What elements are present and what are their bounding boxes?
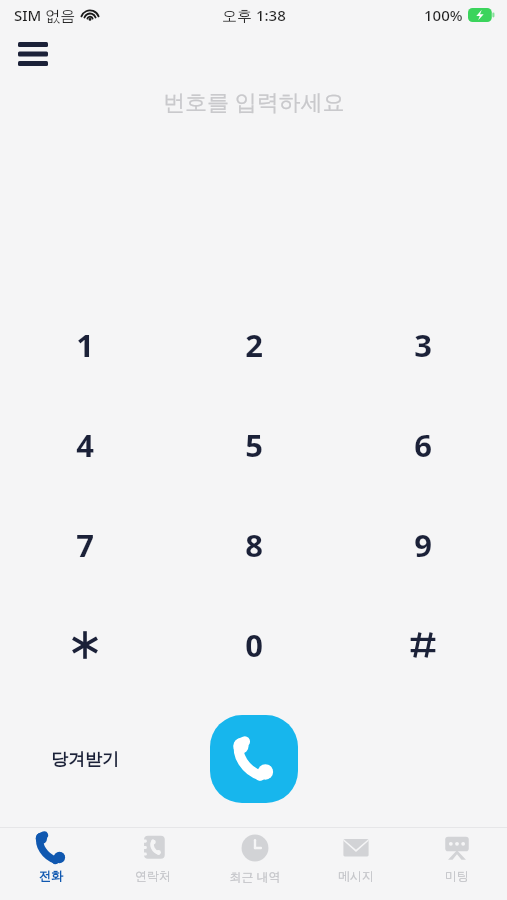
staticText: 번호를 입력하세요: [163, 86, 345, 116]
staticText: 당겨받기: [51, 749, 119, 770]
staticText: 4: [76, 424, 94, 466]
button[interactable]: 5: [169, 395, 338, 495]
staticText: 메시지: [338, 868, 374, 883]
staticText: 6: [414, 424, 432, 466]
button[interactable]: 4: [0, 395, 169, 495]
button[interactable]: 전화 걸기: [210, 715, 298, 803]
button[interactable]: 1: [0, 295, 169, 395]
staticText: 최근 내역: [229, 868, 281, 884]
button[interactable]: 8: [169, 495, 338, 595]
button[interactable]: 7: [0, 495, 169, 595]
staticText: 8: [245, 524, 263, 566]
button[interactable]: 0: [169, 595, 338, 695]
button[interactable]: [338, 595, 507, 695]
button[interactable]: 메뉴: [10, 31, 56, 77]
button[interactable]: 연락처: [102, 828, 204, 900]
button[interactable]: 당겨받기: [0, 713, 169, 805]
staticText: 미팅: [445, 868, 469, 883]
staticText: 1: [76, 324, 94, 366]
button[interactable]: [0, 595, 169, 695]
button[interactable]: 2: [169, 295, 338, 395]
button[interactable]: 미팅: [406, 828, 507, 900]
staticText: 0: [245, 624, 263, 666]
button[interactable]: 메시지: [305, 828, 406, 900]
staticText: 연락처: [135, 868, 171, 883]
button[interactable]: 9: [338, 495, 507, 595]
staticText: 전화: [39, 868, 63, 883]
staticText: 7: [76, 524, 94, 566]
staticText: SIM 없음: [14, 5, 76, 25]
staticText: 9: [414, 524, 432, 566]
staticText: 2: [245, 324, 263, 366]
button[interactable]: 3: [338, 295, 507, 395]
button[interactable]: 최근 내역: [204, 828, 305, 900]
button[interactable]: 전화: [0, 828, 102, 900]
staticText: 5: [245, 424, 263, 466]
button[interactable]: 6: [338, 395, 507, 495]
staticText: 오후 1:38: [222, 5, 286, 25]
staticText: 100%: [424, 5, 463, 25]
staticText: 3: [414, 324, 432, 366]
